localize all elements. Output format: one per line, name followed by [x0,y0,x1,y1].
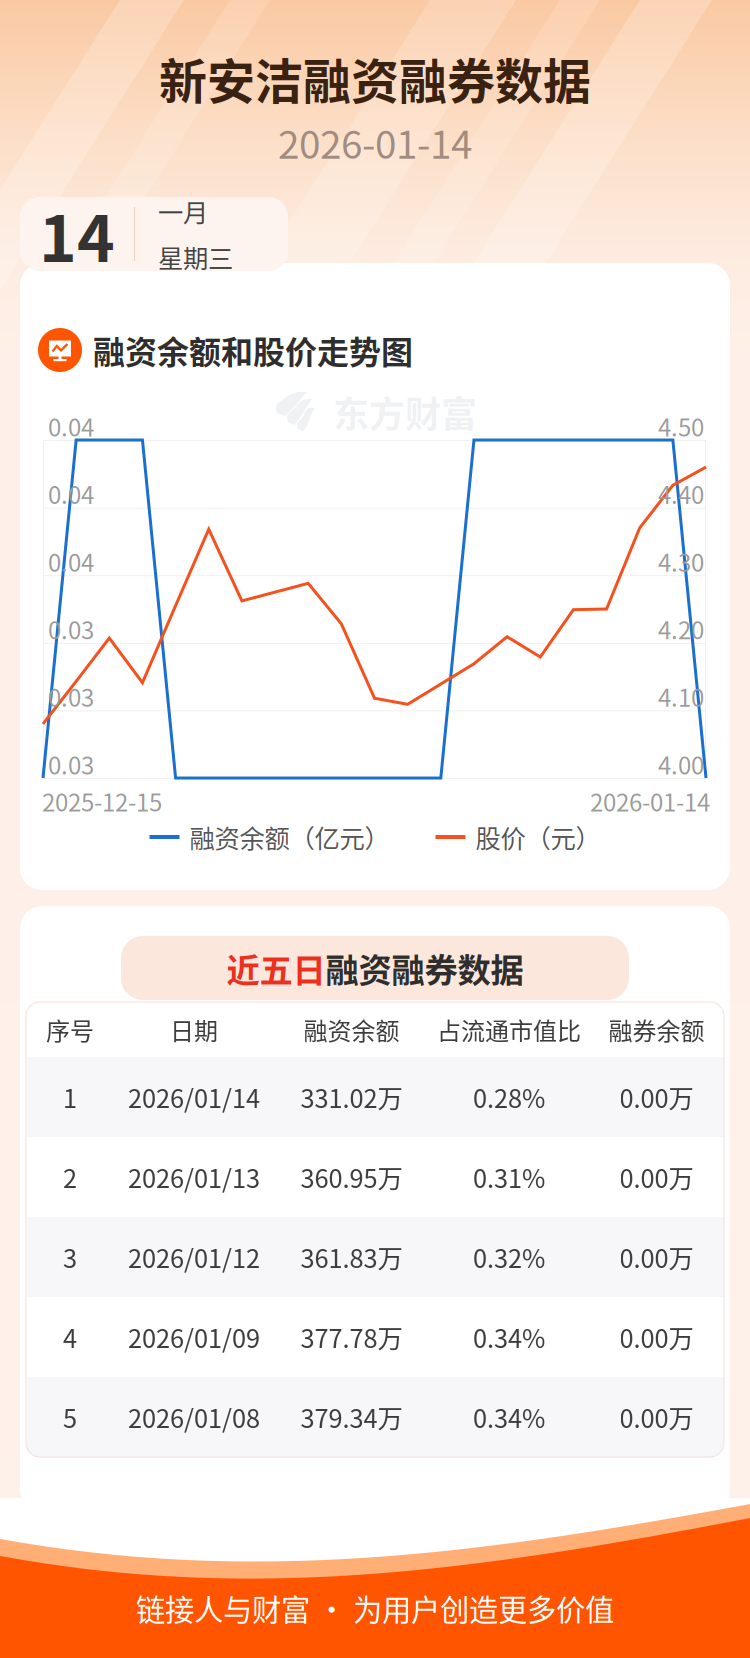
staticText: 361.83万 [300,1239,402,1275]
staticText: 4.10 [658,679,704,714]
staticText: 2026/01/14 [128,1079,260,1115]
staticText: 360.95万 [300,1159,402,1195]
staticText: 东方财富 [333,386,477,438]
staticText: 一月 [158,193,208,229]
staticText: 日期 [170,1012,218,1047]
staticText: 0.31% [473,1159,545,1195]
staticText: 2026/01/09 [128,1319,260,1355]
staticText: 股价（元） [475,819,600,855]
staticText: 2025-12-15 [42,784,162,818]
staticText: 3 [63,1239,77,1275]
staticText: 0.34% [473,1319,545,1355]
staticText: 2026/01/12 [128,1239,260,1275]
staticText: 序号 [46,1012,94,1047]
staticText: 379.34万 [300,1399,402,1435]
staticText: 0.00万 [619,1399,693,1435]
staticText: 近五日 [226,944,325,992]
staticText: 0.00万 [619,1079,693,1115]
staticText: 0.28% [473,1079,545,1115]
staticText: 2026-01-14 [278,114,472,170]
staticText: 星期三 [158,238,233,275]
staticText: 0.32% [473,1239,545,1275]
staticText: 0.00万 [619,1239,693,1275]
staticText: 0.03 [48,679,94,714]
staticText: 4 [63,1319,77,1355]
staticText: 377.78万 [300,1319,402,1355]
staticText: 0.00万 [619,1159,693,1195]
staticText: 4.00 [658,747,704,781]
staticText: 占流通市值比 [437,1012,581,1047]
staticText: 融资余额（亿元） [189,819,389,855]
staticText: 链接人与财富 · 为用户创造更多价值 [136,1587,614,1629]
staticText: 5 [63,1399,77,1435]
staticText: 4.50 [658,409,704,443]
staticText: 2026-01-14 [590,784,710,818]
staticText: 融券余额 [608,1012,704,1047]
staticText: 2 [63,1159,77,1195]
staticText: 0.04 [48,409,94,443]
staticText: 2026/01/13 [128,1159,260,1195]
staticText: 0.00万 [619,1319,693,1355]
staticText: 0.04 [48,476,94,511]
staticText: 融资余额 [303,1012,399,1047]
staticText: 0.34% [473,1399,545,1435]
staticText: 0.04 [48,544,94,579]
staticText: 14 [39,188,115,280]
staticText: 融资余额和股价走势图 [93,327,413,373]
staticText: 4.20 [658,611,704,646]
staticText: 4.30 [658,544,704,579]
staticText: 2026/01/08 [128,1399,260,1435]
staticText: 0.03 [48,747,94,781]
staticText: 融资融券数据 [325,944,523,992]
staticText: 0.03 [48,611,94,646]
staticText: 1 [63,1079,77,1115]
staticText: 4.40 [658,476,704,511]
staticText: 新安洁融资融券数据 [159,43,591,113]
staticText: 331.02万 [300,1079,402,1115]
